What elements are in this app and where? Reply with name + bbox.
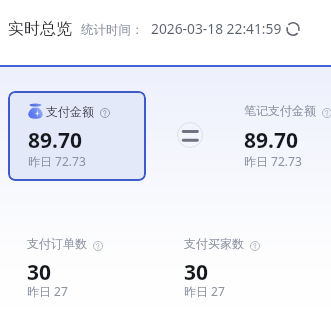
staticText: 89.70 bbox=[244, 126, 298, 155]
staticText: 支付订单数 bbox=[27, 236, 87, 251]
button[interactable]: 支付金额 bbox=[28, 103, 110, 132]
staticText: 30 bbox=[27, 258, 52, 287]
button[interactable]: 支付订单数 bbox=[27, 236, 103, 265]
staticText: 笔记支付金额 bbox=[244, 103, 316, 118]
staticText: 昨日 72.73 bbox=[244, 153, 302, 169]
staticText: 统计时间： bbox=[81, 22, 144, 38]
button[interactable]: 支付买家数 bbox=[184, 236, 260, 265]
staticText: 支付买家数 bbox=[184, 236, 244, 251]
staticText: 30 bbox=[184, 258, 209, 287]
staticText: 支付金额 bbox=[46, 104, 94, 119]
staticText: 昨日 72.73 bbox=[28, 153, 86, 169]
staticText: 2026-03-18 22:41:59 bbox=[151, 19, 282, 38]
button[interactable]: Refresh bbox=[283, 19, 303, 39]
button[interactable] bbox=[8, 91, 146, 181]
staticText: 89.70 bbox=[28, 126, 82, 155]
staticText: 昨日 27 bbox=[27, 283, 68, 299]
button[interactable]: 笔记支付金额 bbox=[244, 103, 331, 132]
staticText: 实时总览 bbox=[8, 19, 72, 39]
staticText: 昨日 27 bbox=[184, 283, 225, 299]
